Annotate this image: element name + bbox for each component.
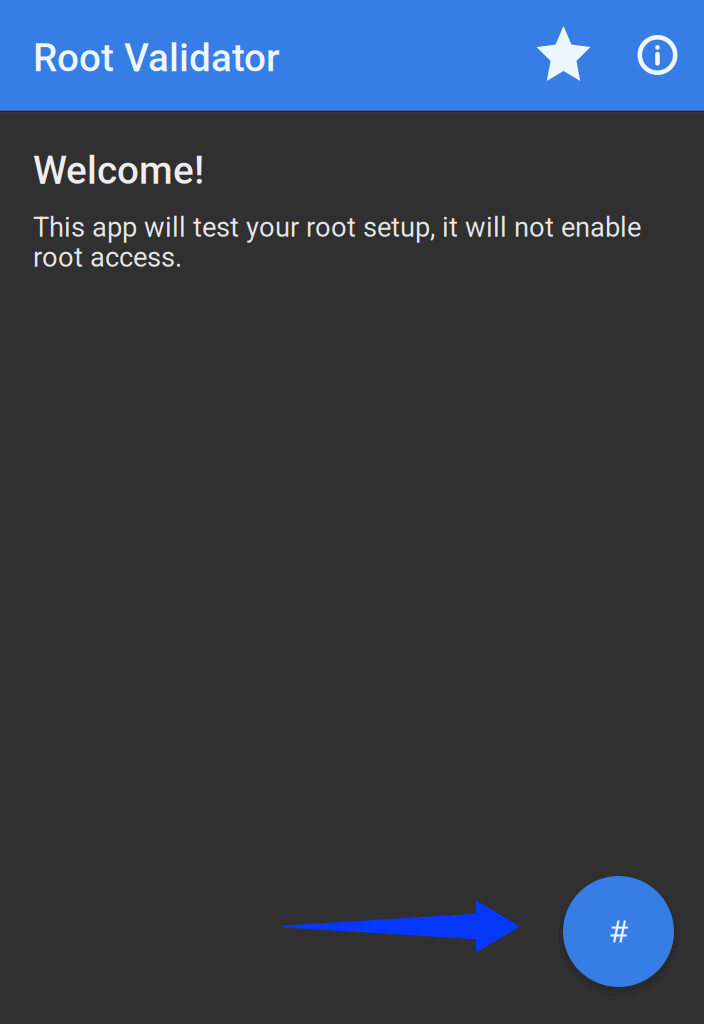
button[interactable]: About [611, 0, 704, 110]
staticText: This app will test your root setup, it w… [33, 211, 641, 273]
button[interactable]: Run root check [558, 871, 679, 992]
button[interactable]: Rate this app [516, 0, 611, 110]
staticText: Root Validator [33, 35, 280, 81]
staticText: Welcome! [33, 148, 204, 193]
staticText: # [608, 913, 628, 950]
